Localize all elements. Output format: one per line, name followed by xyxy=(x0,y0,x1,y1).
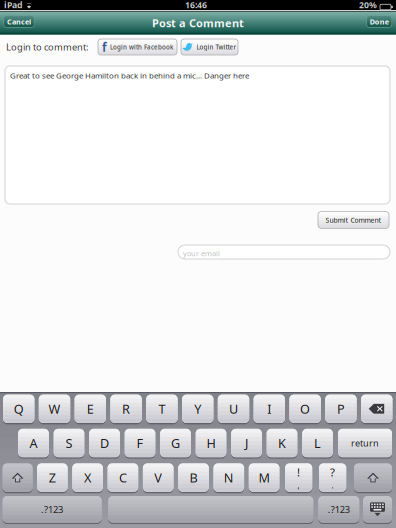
button[interactable]: ! xyxy=(285,463,312,493)
staticText: your email xyxy=(183,248,220,258)
button[interactable]: L xyxy=(302,429,333,459)
button[interactable]: Done xyxy=(366,16,392,28)
button[interactable]: X xyxy=(72,463,103,493)
staticText: H xyxy=(206,434,215,452)
staticText: Q xyxy=(14,400,24,417)
button[interactable]: Q xyxy=(3,395,34,424)
staticText: Login with Facebook xyxy=(110,43,173,51)
button[interactable]: I xyxy=(254,395,285,424)
staticText: return xyxy=(351,437,379,449)
staticText: P xyxy=(337,400,345,417)
staticText: Login Twitter xyxy=(196,43,236,51)
button[interactable]: return xyxy=(338,429,392,459)
staticText: 20% xyxy=(359,0,377,11)
staticText: S xyxy=(65,434,72,452)
staticText: 16:46 xyxy=(185,0,207,11)
staticText: I xyxy=(267,400,271,417)
staticText: A xyxy=(29,434,37,452)
button[interactable]: K xyxy=(267,429,297,459)
staticText: Great to see George Hamilton back in beh… xyxy=(10,70,249,81)
staticText: T xyxy=(158,400,165,417)
button[interactable]: .?123 xyxy=(3,496,102,524)
button[interactable] xyxy=(363,496,392,524)
staticText: , xyxy=(298,480,300,491)
staticText: Y xyxy=(194,400,201,417)
button[interactable]: N xyxy=(213,463,244,493)
button[interactable]: U xyxy=(218,395,249,424)
button[interactable]: Cancel xyxy=(3,16,34,28)
staticText: Submit Comment xyxy=(325,215,381,225)
button[interactable]: H xyxy=(196,429,226,459)
button[interactable] xyxy=(3,463,33,493)
button[interactable]: Login Twitter xyxy=(181,39,238,55)
button[interactable]: V xyxy=(143,463,173,493)
button[interactable]: Z xyxy=(37,463,68,493)
button[interactable]: W xyxy=(39,395,70,424)
staticText: ? xyxy=(330,464,335,480)
button[interactable]: G xyxy=(160,429,191,459)
button[interactable] xyxy=(361,395,392,424)
button[interactable]: .?123 xyxy=(318,496,359,524)
staticText: E xyxy=(87,400,94,417)
staticText: G xyxy=(171,434,180,452)
staticText: O xyxy=(300,400,310,417)
staticText: C xyxy=(119,469,127,486)
staticText: U xyxy=(229,400,238,417)
button[interactable]: Submit Comment xyxy=(318,211,389,228)
staticText: .?123 xyxy=(41,503,63,516)
staticText: D xyxy=(100,434,109,452)
button[interactable]: f xyxy=(98,39,177,55)
button[interactable]: B xyxy=(178,463,209,493)
button[interactable]: Y xyxy=(182,395,213,424)
staticText: X xyxy=(84,469,91,486)
button[interactable]: O xyxy=(289,395,321,424)
staticText: V xyxy=(154,469,162,486)
button[interactable]: P xyxy=(325,395,357,424)
staticText: . xyxy=(332,480,334,491)
button[interactable]: C xyxy=(108,463,138,493)
staticText: W xyxy=(48,400,60,417)
staticText: K xyxy=(278,434,286,452)
staticText: f xyxy=(102,39,107,55)
button[interactable]: A xyxy=(18,429,49,459)
button[interactable]: M xyxy=(249,463,279,493)
button[interactable]: R xyxy=(110,395,142,424)
staticText: Done xyxy=(370,17,389,26)
staticText: Cancel xyxy=(7,17,31,26)
staticText: L xyxy=(314,434,321,452)
staticText: J xyxy=(245,434,248,452)
button[interactable]: D xyxy=(89,429,120,459)
staticText: R xyxy=(122,400,130,417)
button[interactable]: J xyxy=(231,429,262,459)
staticText: M xyxy=(259,469,270,486)
button[interactable]: T xyxy=(146,395,178,424)
staticText: .?123 xyxy=(328,503,350,516)
staticText: B xyxy=(189,469,197,486)
staticText: F xyxy=(136,434,143,452)
staticText: iPad xyxy=(4,0,22,11)
button[interactable]: F xyxy=(125,429,155,459)
staticText: ! xyxy=(297,464,300,480)
staticText: N xyxy=(224,469,234,486)
button[interactable] xyxy=(354,463,392,493)
button[interactable]: E xyxy=(75,395,106,424)
button[interactable] xyxy=(108,496,313,524)
button[interactable]: ? xyxy=(319,463,346,493)
staticText: Login to comment: xyxy=(6,41,89,53)
staticText: Z xyxy=(49,469,56,486)
button[interactable]: S xyxy=(54,429,84,459)
staticText: Post a Comment xyxy=(152,16,244,30)
